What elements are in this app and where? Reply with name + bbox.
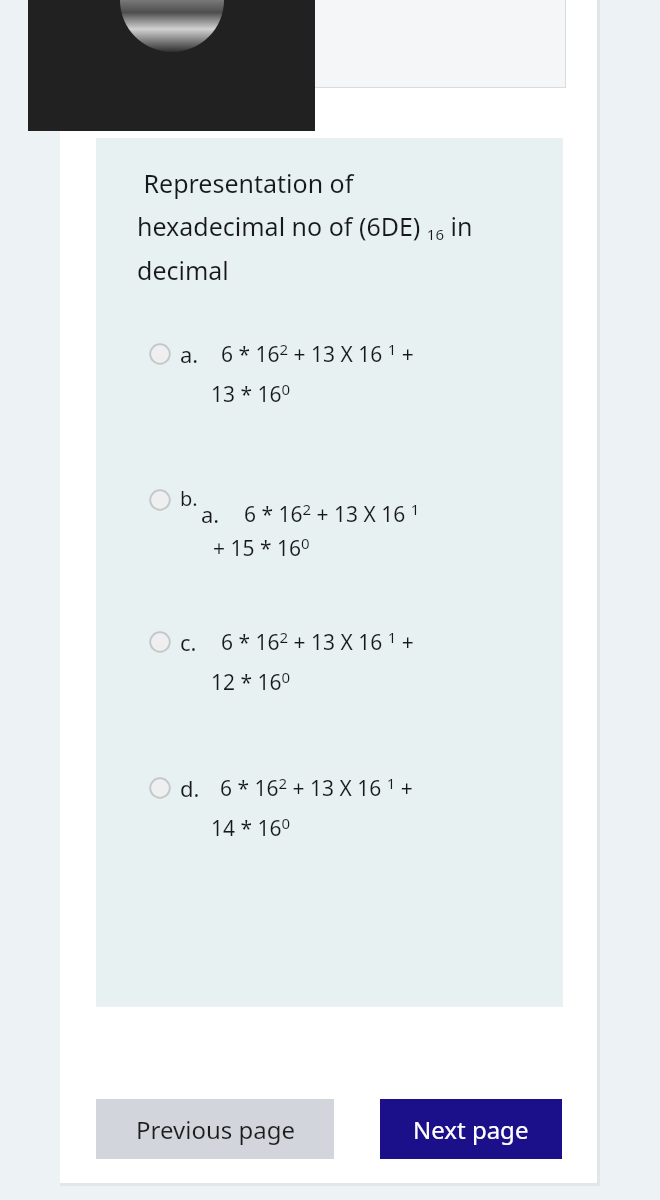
button[interactable]: Video lecture [28, 0, 315, 131]
button[interactable]: Next page [380, 1099, 562, 1159]
staticText: b. [180, 485, 198, 512]
staticText: a. [201, 499, 220, 529]
staticText: a. [180, 339, 199, 369]
staticText: Previous page [136, 1113, 295, 1146]
button[interactable]: d. [96, 773, 563, 842]
staticText: hexadecimal no of (6DE) 16 in [137, 209, 473, 244]
staticText: 14 * 160 [211, 813, 291, 842]
staticText: 6 * 162 + 13 X 16 1 [244, 499, 420, 528]
staticText: 6 * 162 + 13 X 16 1 + [221, 339, 414, 368]
staticText: 6 * 162 + 13 X 16 1 + [221, 627, 414, 656]
button[interactable]: a. [96, 339, 563, 408]
button[interactable]: c. [96, 627, 563, 696]
staticText: decimal [137, 253, 229, 287]
staticText: d. [180, 773, 200, 803]
button[interactable]: b. [96, 485, 563, 562]
staticText: 12 * 160 [211, 667, 291, 696]
staticText: + 15 * 160 [213, 533, 310, 562]
staticText: c. [180, 627, 197, 657]
staticText: 13 * 160 [211, 379, 291, 408]
staticText: 6 * 162 + 13 X 16 1 + [220, 773, 413, 802]
staticText: Representation of [137, 166, 354, 200]
button[interactable]: Previous page [96, 1099, 334, 1159]
staticText: Next page [413, 1113, 529, 1146]
